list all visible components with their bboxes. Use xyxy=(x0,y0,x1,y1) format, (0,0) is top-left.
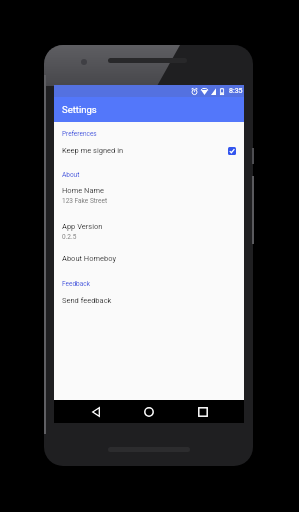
button[interactable]: Home Name xyxy=(54,186,244,210)
staticText: About xyxy=(62,171,80,179)
staticText: Feedback xyxy=(62,280,90,288)
button[interactable]: Recent apps xyxy=(187,400,219,423)
button[interactable]: App Version xyxy=(54,222,244,246)
staticText: App Version xyxy=(62,222,103,231)
staticText: Home Name xyxy=(62,186,105,195)
button[interactable]: About Homeboy xyxy=(54,249,244,267)
staticText: 0.2.5 xyxy=(62,233,77,241)
button[interactable]: Send feedback xyxy=(54,291,244,309)
button[interactable]: Keep me signed in xyxy=(54,142,244,159)
staticText: Keep me signed in xyxy=(62,146,124,155)
staticText: About Homeboy xyxy=(62,254,116,263)
button[interactable]: Back xyxy=(80,400,112,423)
staticText: Send feedback xyxy=(62,296,112,305)
staticText: 8:35 xyxy=(229,87,243,95)
staticText: Preferences xyxy=(62,130,97,138)
button[interactable]: Home xyxy=(133,400,165,423)
staticText: 123 Fake Street xyxy=(62,197,108,205)
staticText: Settings xyxy=(62,104,97,115)
